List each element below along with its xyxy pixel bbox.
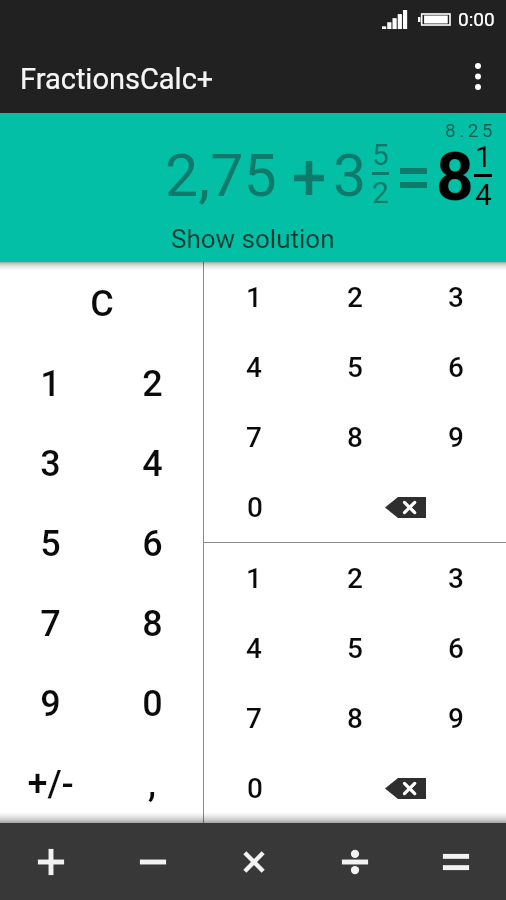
button[interactable]: More options (450, 48, 506, 104)
button[interactable]: 5 (304, 613, 405, 683)
staticText: 2 (372, 175, 389, 210)
staticText: 0 (247, 491, 263, 524)
button[interactable]: 8 (101, 583, 203, 663)
staticText: 0 (247, 772, 263, 805)
staticText: 4 (475, 177, 492, 212)
button[interactable]: 4 (204, 332, 304, 402)
button[interactable]: 6 (405, 332, 506, 402)
staticText: 2 (142, 363, 163, 405)
button[interactable]: 1 (0, 343, 101, 423)
staticText: , (148, 763, 156, 805)
staticText: C (90, 283, 114, 325)
staticText: 7 (246, 421, 262, 454)
staticText: 2 (347, 562, 363, 595)
button[interactable]: , (101, 743, 203, 823)
button[interactable]: 2 (304, 543, 405, 613)
button[interactable]: 1 (204, 262, 304, 332)
button[interactable]: 2 (304, 262, 405, 332)
button[interactable]: 0 (204, 753, 305, 823)
button[interactable]: +/- (0, 743, 101, 823)
staticText: 4 (142, 443, 163, 485)
staticText: 9 (448, 421, 464, 454)
button[interactable]: Show solution (171, 224, 335, 254)
staticText: 8 (142, 603, 163, 645)
staticText: 9 (40, 683, 61, 725)
button[interactable]: C (0, 262, 203, 343)
staticText: 7 (40, 603, 61, 645)
button[interactable]: 1 (204, 543, 304, 613)
staticText: 2,75 (165, 141, 277, 210)
staticText: 1 (475, 139, 492, 174)
button[interactable]: Plus (0, 823, 102, 900)
staticText: FractionsCalc+ (20, 62, 214, 96)
staticText: 3 (333, 141, 367, 210)
staticText: 1 (246, 281, 262, 314)
button[interactable]: Divide (304, 823, 405, 900)
button[interactable]: 3 (405, 262, 506, 332)
staticText: 6 (448, 632, 464, 665)
staticText: 6 (142, 523, 163, 565)
staticText: 3 (448, 281, 464, 314)
staticText: 2 (347, 281, 363, 314)
button[interactable]: 5 (304, 332, 405, 402)
staticText: 6 (448, 351, 464, 384)
staticText: 8 (436, 139, 474, 216)
button[interactable]: 9 (405, 683, 506, 753)
button[interactable]: 7 (204, 402, 304, 472)
staticText: 8 (347, 421, 363, 454)
staticText: 5 (347, 632, 363, 665)
staticText: 0:00 (458, 8, 495, 30)
staticText: 4 (246, 632, 262, 665)
button[interactable]: 7 (204, 683, 304, 753)
button[interactable]: 9 (405, 402, 506, 472)
button[interactable]: Backspace (305, 753, 506, 823)
staticText: 9 (448, 702, 464, 735)
button[interactable]: Backspace (305, 472, 506, 542)
staticText: 0 (142, 683, 163, 725)
staticText: 5 (347, 351, 363, 384)
staticText: 3 (448, 562, 464, 595)
staticText: 8 (347, 702, 363, 735)
button[interactable]: 4 (204, 613, 304, 683)
button[interactable]: Minus (102, 823, 203, 900)
button[interactable]: 6 (405, 613, 506, 683)
button[interactable]: 7 (0, 583, 101, 663)
button[interactable]: 2 (101, 343, 203, 423)
button[interactable]: 4 (101, 423, 203, 503)
staticText: 5 (372, 137, 389, 172)
button[interactable]: 9 (0, 663, 101, 743)
staticText: 1 (246, 562, 262, 595)
button[interactable]: 8 (304, 683, 405, 753)
button[interactable]: 3 (405, 543, 506, 613)
button[interactable]: 5 (0, 503, 101, 583)
staticText: 4 (246, 351, 262, 384)
button[interactable]: 3 (0, 423, 101, 503)
staticText: 3 (40, 443, 61, 485)
button[interactable]: 0 (101, 663, 203, 743)
staticText: 5 (40, 523, 61, 565)
staticText: 7 (246, 702, 262, 735)
button[interactable]: 6 (101, 503, 203, 583)
staticText: 1 (40, 363, 61, 405)
staticText: +/- (27, 763, 74, 805)
button[interactable]: Equals (405, 823, 506, 900)
staticText: 8.25 (445, 119, 497, 141)
button[interactable]: 8 (304, 402, 405, 472)
button[interactable]: Multiply (203, 823, 304, 900)
button[interactable]: 0 (204, 472, 305, 542)
